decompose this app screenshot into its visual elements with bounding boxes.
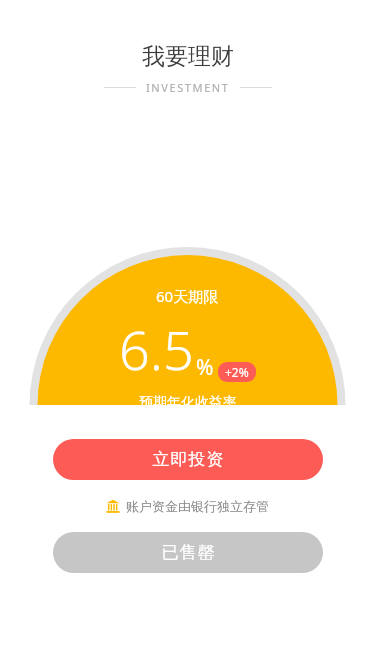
button[interactable]: 立即投资 <box>53 439 323 480</box>
button[interactable]: 已售罄 <box>53 532 323 573</box>
other: Bank <box>106 499 120 513</box>
staticText: 账户资金由银行独立存管 <box>126 498 269 514</box>
staticText: +2% <box>225 364 249 380</box>
staticText: 6.5 <box>119 312 194 386</box>
staticText: 已售罄 <box>161 542 215 563</box>
staticText: % <box>196 353 214 382</box>
staticText: 60天期限 <box>156 286 219 306</box>
staticText: 立即投资 <box>152 449 224 470</box>
staticText: INVESTMENT <box>146 80 230 95</box>
staticText: 我要理财 <box>142 42 234 71</box>
staticText: 预期年化收益率 <box>139 394 237 412</box>
